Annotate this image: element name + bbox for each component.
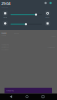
staticText: Sound [1,32,6,34]
button[interactable]: Recent apps [42,95,44,98]
button[interactable]: Done [45,11,50,16]
button[interactable]: Home [26,95,28,98]
staticText: Media [3,16,7,18]
staticText: Tue, 4 Sep [1,6,8,8]
button[interactable]: Account [49,2,52,4]
button[interactable]: Adjust level [10,13,42,16]
button[interactable]: Adjust level [10,23,42,25]
button[interactable]: Cast [45,21,50,26]
staticText: Now playing [6,90,14,92]
staticText: Done [46,16,50,18]
button[interactable]: Status [44,2,47,4]
staticText: Device [14,32,19,34]
button[interactable]: Back [9,95,13,98]
button[interactable]: Media volume [3,11,8,16]
staticText: 29:04 [1,1,10,6]
button[interactable]: Ring volume [3,21,8,26]
